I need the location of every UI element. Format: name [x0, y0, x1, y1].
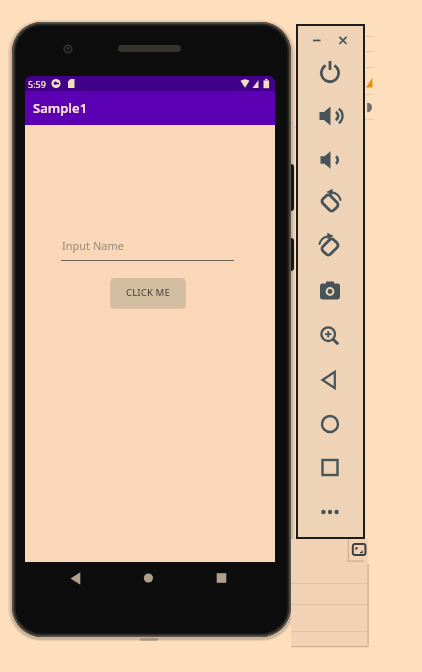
button[interactable] [312, 452, 348, 488]
button[interactable]: CLICK ME [111, 278, 185, 307]
button[interactable] [312, 30, 348, 66]
button[interactable] [312, 101, 348, 137]
button[interactable] [312, 58, 348, 94]
button[interactable] [312, 321, 348, 357]
button[interactable]: Input Name [61, 233, 234, 263]
button[interactable] [312, 497, 348, 533]
button[interactable] [312, 409, 348, 445]
staticText: Sample1 [33, 99, 88, 117]
button[interactable] [206, 564, 236, 592]
button[interactable] [312, 232, 348, 268]
button[interactable] [312, 276, 348, 312]
button[interactable] [60, 564, 90, 592]
button[interactable] [133, 564, 163, 592]
button[interactable] [312, 188, 348, 224]
button[interactable] [312, 145, 348, 181]
staticText: Input Name [62, 238, 124, 253]
staticText: 5:59 [28, 78, 46, 90]
staticText: CLICK ME [126, 286, 170, 299]
button[interactable] [312, 365, 348, 401]
